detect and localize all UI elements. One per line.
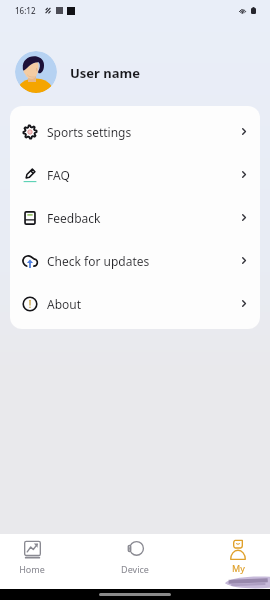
button[interactable]: Sports settings (10, 110, 260, 153)
staticText: My (232, 562, 245, 574)
button[interactable]: Home (1, 534, 63, 589)
button[interactable]: Check for updates (10, 239, 260, 282)
staticText: Check for updates (47, 253, 150, 269)
staticText: About (47, 296, 82, 312)
staticText: FAQ (47, 167, 70, 183)
staticText: Home (19, 563, 45, 575)
staticText: Device (121, 563, 149, 575)
button[interactable]: FAQ (10, 153, 260, 196)
staticText: Sports settings (47, 124, 132, 140)
button[interactable]: Feedback (10, 196, 260, 239)
button[interactable]: My (207, 534, 269, 589)
staticText: User name (70, 64, 140, 82)
staticText: Feedback (47, 210, 101, 226)
button[interactable]: Device (104, 534, 166, 589)
button[interactable]: About (10, 282, 260, 325)
staticText: 16:12 (15, 5, 36, 16)
